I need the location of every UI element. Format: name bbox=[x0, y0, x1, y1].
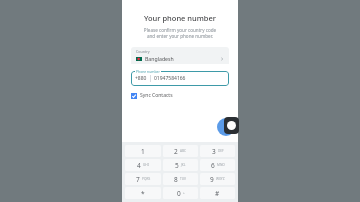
staticText: 8 bbox=[174, 175, 178, 184]
staticText: PQRS bbox=[142, 177, 151, 181]
staticText: +880 bbox=[135, 75, 147, 82]
button[interactable]: 0 bbox=[163, 187, 198, 199]
staticText: Sync Contacts bbox=[140, 92, 173, 99]
button[interactable]: 8 bbox=[163, 173, 198, 185]
staticText: 3 bbox=[212, 147, 216, 156]
button[interactable]: 6 bbox=[200, 159, 235, 171]
button[interactable]: Sync Contacts bbox=[131, 91, 173, 100]
staticText: Phone number bbox=[136, 69, 160, 74]
button[interactable]: 2 bbox=[163, 145, 198, 157]
staticText: 2 bbox=[174, 147, 178, 156]
staticText: GHI bbox=[143, 163, 149, 167]
staticText: Your phone number bbox=[122, 13, 238, 23]
button[interactable]: 7 bbox=[125, 173, 161, 185]
staticText: * bbox=[141, 189, 145, 198]
staticText: WXYZ bbox=[216, 177, 225, 181]
staticText: JKL bbox=[181, 163, 186, 167]
staticText: TUV bbox=[180, 177, 187, 181]
button[interactable]: # bbox=[200, 187, 235, 199]
staticText: 7 bbox=[136, 175, 140, 184]
button[interactable]: 5 bbox=[163, 159, 198, 171]
button[interactable]: 4 bbox=[125, 159, 161, 171]
button[interactable]: 3 bbox=[200, 145, 235, 157]
staticText: 5 bbox=[175, 161, 179, 170]
button[interactable]: 9 bbox=[200, 173, 235, 185]
staticText: 0 bbox=[177, 189, 181, 198]
staticText: DEF bbox=[218, 149, 224, 153]
staticText: Country bbox=[136, 49, 150, 54]
staticText: 4 bbox=[137, 161, 141, 170]
button[interactable]: +880 bbox=[131, 71, 229, 86]
button[interactable]: Country bbox=[131, 47, 229, 64]
button[interactable]: * bbox=[125, 187, 161, 199]
button[interactable]: 1 bbox=[125, 145, 161, 157]
staticText: Bangladesh bbox=[145, 55, 174, 62]
button[interactable]: Next bbox=[217, 118, 235, 136]
staticText: + bbox=[183, 191, 185, 195]
staticText: MNO bbox=[217, 163, 225, 167]
staticText: # bbox=[215, 189, 220, 198]
staticText: 9 bbox=[210, 175, 214, 184]
staticText: 1 bbox=[141, 147, 145, 156]
staticText: 01947584166 bbox=[154, 75, 186, 82]
staticText: Please confirm your country code and ent… bbox=[122, 27, 238, 39]
staticText: 6 bbox=[211, 161, 215, 170]
staticText: ABC bbox=[180, 149, 187, 153]
